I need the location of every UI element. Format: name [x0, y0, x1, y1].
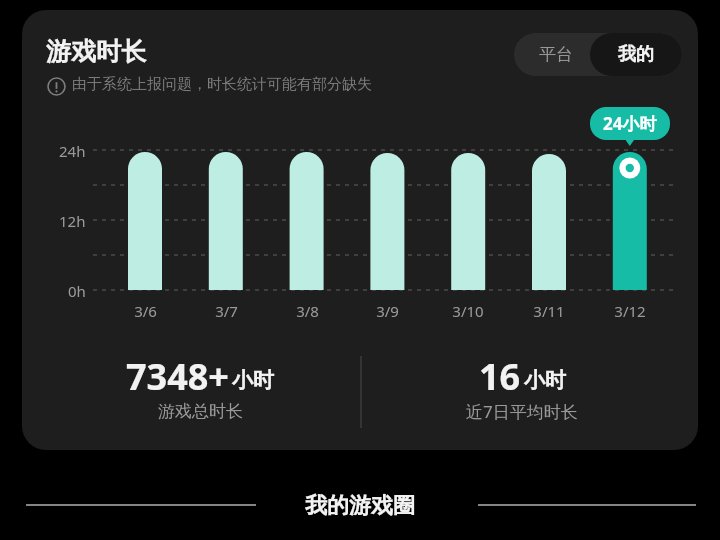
other: Info — [47, 77, 66, 96]
staticText: 3/10 — [452, 301, 484, 321]
staticText: 3/7 — [215, 301, 238, 321]
button[interactable]: 平台 — [514, 33, 598, 76]
staticText: 小时 — [232, 367, 274, 393]
staticText: 平台 — [539, 44, 573, 65]
staticText: 由于系统上报问题，时长统计可能有部分缺失 — [72, 75, 372, 94]
button[interactable]: 24小时 — [590, 107, 670, 140]
staticText: 近7日平均时长 — [466, 400, 578, 423]
button[interactable]: 7348+ — [40, 352, 360, 432]
staticText: 3/11 — [533, 301, 565, 321]
staticText: 3/12 — [614, 301, 646, 321]
staticText: 16 — [479, 352, 521, 396]
button[interactable]: 16 — [362, 352, 682, 432]
staticText: 24h — [59, 141, 86, 161]
staticText: 3/8 — [296, 301, 319, 321]
staticText: 12h — [59, 211, 86, 231]
staticText: 游戏总时长 — [158, 401, 243, 422]
staticText: 我的 — [618, 43, 654, 66]
staticText: 24小时 — [603, 112, 657, 135]
staticText: 0h — [68, 281, 86, 301]
staticText: 我的游戏圈 — [305, 492, 415, 520]
staticText: 3/6 — [134, 301, 157, 321]
button[interactable]: 我的游戏圈 — [262, 488, 458, 524]
staticText: 3/9 — [376, 301, 399, 321]
button[interactable]: 我的 — [590, 33, 682, 76]
staticText: 小时 — [524, 367, 566, 393]
staticText: 7348+ — [126, 352, 229, 396]
staticText: 游戏时长 — [46, 36, 146, 67]
